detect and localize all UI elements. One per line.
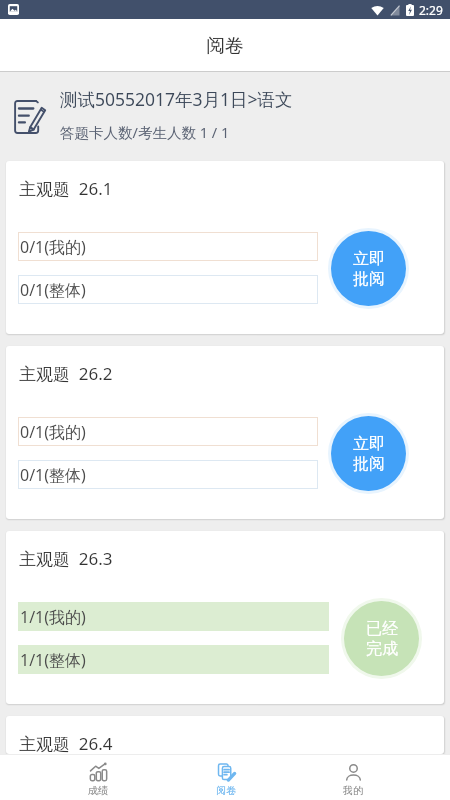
staticText: 阅卷 (216, 784, 236, 797)
button[interactable]: 已经 完成 (344, 601, 419, 676)
button[interactable]: 我的 (289, 754, 416, 800)
staticText: 1/1(我的) (20, 606, 86, 628)
button[interactable]: 成绩 (34, 754, 162, 800)
staticText: 立即 批阅 (353, 249, 385, 289)
staticText: 阅卷 (206, 34, 244, 58)
button[interactable]: 主观题 26.3 (6, 531, 444, 704)
staticText: 1/1(整体) (20, 649, 86, 671)
staticText: 主观题 26.1 (19, 177, 113, 200)
button[interactable]: 立即 批阅 (331, 231, 406, 306)
staticText: 已经 完成 (366, 619, 398, 659)
staticText: 0/1(整体) (20, 464, 86, 486)
staticText: 主观题 26.4 (19, 732, 113, 754)
button[interactable]: 立即 批阅 (331, 416, 406, 491)
staticText: 2:29 (419, 2, 443, 18)
staticText: 测试50552017年3月1日>语文 (60, 87, 293, 111)
button[interactable]: 主观题 26.4 (6, 716, 444, 754)
staticText: 0/1(整体) (20, 279, 86, 301)
staticText: 主观题 26.3 (19, 547, 113, 570)
staticText: 0/1(我的) (20, 421, 86, 443)
staticText: 成绩 (88, 784, 108, 797)
button[interactable]: 主观题 26.2 (6, 346, 444, 519)
button[interactable]: 主观题 26.1 (6, 161, 444, 334)
staticText: 0/1(我的) (20, 236, 86, 258)
staticText: 答题卡人数/考生人数 1 / 1 (60, 122, 230, 142)
staticText: 立即 批阅 (353, 434, 385, 474)
button[interactable]: 阅卷 (162, 754, 289, 800)
staticText: 主观题 26.2 (19, 362, 113, 385)
staticText: 我的 (343, 784, 363, 797)
